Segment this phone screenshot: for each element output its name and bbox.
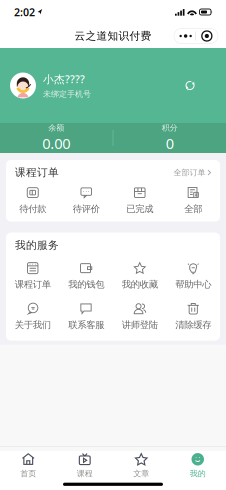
button[interactable]: 已完成: [113, 185, 166, 216]
staticText: 全部: [184, 203, 202, 215]
staticText: 我的: [190, 469, 206, 479]
button[interactable]: 小杰????: [10, 72, 91, 99]
staticText: 待付款: [19, 203, 46, 215]
button[interactable]: 清除缓存: [166, 301, 220, 332]
staticText: 已完成: [126, 203, 153, 215]
button[interactable]: 联系客服: [59, 301, 113, 332]
staticText: 我的服务: [15, 239, 59, 252]
staticText: 讲师登陆: [122, 319, 158, 331]
button[interactable]: 我的钱包: [59, 261, 113, 291]
button[interactable]: 讲师登陆: [113, 301, 166, 332]
button[interactable]: 待评价: [59, 185, 113, 216]
staticText: 余额: [48, 123, 64, 133]
button[interactable]: 我的: [169, 453, 226, 479]
button[interactable]: More options: [174, 28, 218, 43]
staticText: 待评价: [73, 203, 100, 215]
button[interactable]: 我的收藏: [113, 261, 166, 291]
button[interactable]: 余额: [0, 123, 113, 153]
staticText: 未绑定手机号: [43, 89, 91, 99]
button[interactable]: 全部订单: [173, 168, 211, 177]
button[interactable]: 关于我们: [6, 301, 59, 332]
staticText: 积分: [162, 123, 178, 133]
staticText: 云之道知识付费: [74, 29, 151, 42]
staticText: 关于我们: [15, 319, 51, 331]
staticText: 清除缓存: [175, 319, 211, 331]
button[interactable]: 课程: [56, 453, 113, 479]
staticText: 文章: [133, 469, 149, 479]
button[interactable]: 首页: [0, 453, 56, 479]
button[interactable]: 全部: [166, 185, 220, 216]
button[interactable]: 课程订单: [6, 261, 59, 291]
button[interactable]: 积分: [113, 123, 226, 153]
staticText: 课程订单: [15, 279, 51, 290]
staticText: 全部订单: [173, 168, 205, 177]
staticText: 我的钱包: [68, 279, 104, 290]
button[interactable]: 文章: [113, 453, 169, 479]
staticText: 帮助中心: [175, 279, 211, 290]
button[interactable]: 帮助中心: [166, 261, 220, 291]
staticText: 0.00: [42, 134, 70, 153]
staticText: 课程: [77, 469, 93, 479]
staticText: 我的收藏: [122, 279, 158, 290]
button[interactable]: Refresh: [180, 75, 200, 95]
button[interactable]: 待付款: [6, 185, 59, 216]
staticText: 联系客服: [68, 319, 104, 331]
staticText: 课程订单: [15, 166, 59, 179]
staticText: 小杰????: [43, 72, 85, 86]
staticText: 0: [166, 134, 174, 153]
staticText: 2:02: [14, 5, 35, 19]
staticText: 首页: [20, 469, 36, 479]
